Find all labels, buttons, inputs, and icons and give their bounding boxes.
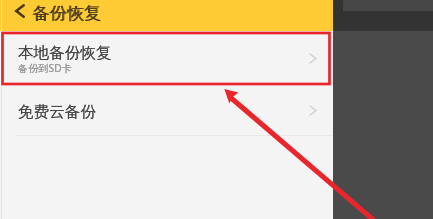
button[interactable]: 免费云备份 <box>0 84 333 135</box>
staticText: 本地备份恢复 <box>18 43 112 63</box>
staticText: 免费云备份 <box>18 102 96 122</box>
staticText: 备份恢复 <box>32 2 101 24</box>
staticText: 本地备份恢复 <box>18 43 112 63</box>
staticText: 免费云备份 <box>18 102 96 122</box>
button[interactable]: Back <box>4 0 34 28</box>
staticText: 备份到SD卡 <box>18 61 72 75</box>
button[interactable]: 本地备份恢复 <box>0 31 333 83</box>
staticText: 备份到SD卡 <box>18 61 72 75</box>
staticText: 备份恢复 <box>33 2 102 24</box>
